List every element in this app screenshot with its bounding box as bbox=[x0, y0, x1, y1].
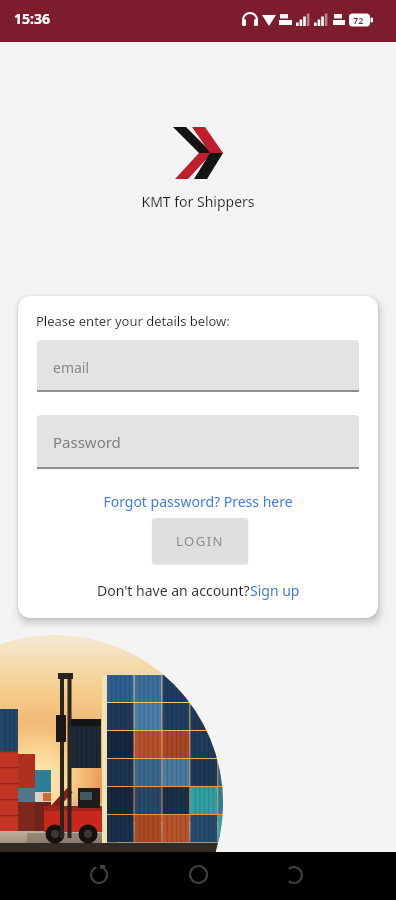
button[interactable]: Sign up bbox=[250, 581, 300, 600]
staticText: 15:36 bbox=[14, 9, 50, 28]
staticText: Don't have an account? bbox=[97, 581, 250, 600]
staticText: Please enter your details below: bbox=[36, 312, 230, 330]
button[interactable] bbox=[132, 852, 264, 900]
button[interactable]: Password bbox=[37, 415, 359, 469]
button[interactable]: LOGIN bbox=[152, 518, 248, 564]
staticText: KMT for Shippers bbox=[0, 192, 396, 211]
staticText: LOGIN bbox=[176, 532, 224, 550]
button[interactable] bbox=[264, 852, 396, 900]
button[interactable]: email bbox=[37, 340, 359, 392]
staticText: Password bbox=[53, 432, 121, 452]
button[interactable]: Forgot password? Press here bbox=[18, 492, 378, 511]
staticText: email bbox=[53, 358, 90, 377]
button[interactable] bbox=[0, 852, 132, 900]
staticText: 72 bbox=[353, 14, 364, 26]
